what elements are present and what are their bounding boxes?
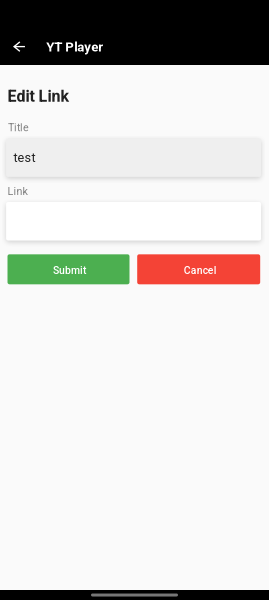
button[interactable]: Title [6, 138, 261, 177]
staticText: YT Player [46, 39, 103, 55]
button[interactable]: Submit [7, 254, 129, 284]
staticText: Cancel [184, 264, 217, 276]
staticText: test [13, 150, 35, 165]
staticText: Edit Link [8, 87, 70, 106]
staticText: Submit [53, 264, 86, 276]
button[interactable]: Back [6, 34, 32, 60]
button[interactable]: Cancel [137, 254, 260, 284]
staticText: Link [8, 185, 28, 198]
staticText: Title [8, 121, 29, 134]
